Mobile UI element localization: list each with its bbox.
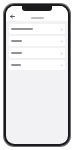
button[interactable]: Профиль (9, 36, 65, 46)
button[interactable]: Back (9, 13, 15, 19)
button[interactable]: Аккаунт (9, 48, 65, 58)
button[interactable]: Помощь (9, 60, 65, 70)
button[interactable]: Общие настройки (9, 24, 65, 34)
